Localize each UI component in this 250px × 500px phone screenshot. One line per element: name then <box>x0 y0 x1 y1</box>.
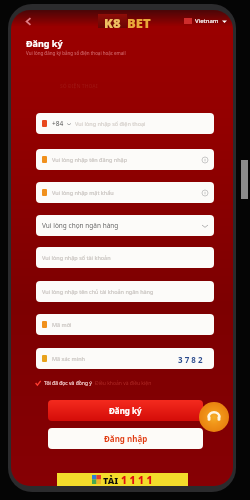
button[interactable]: Vietnam <box>184 17 227 25</box>
staticText: Vui lòng nhập mật khẩu <box>52 189 114 196</box>
button[interactable]: Mã mời <box>36 314 214 335</box>
staticText: K8 <box>104 14 121 28</box>
staticText: Đăng ký <box>26 37 63 49</box>
staticText: Đăng ký <box>109 405 142 416</box>
staticText: BET <box>127 14 151 28</box>
staticText: Vui lòng chọn ngân hàng <box>42 221 119 230</box>
staticText: 1 1 1 1 <box>121 473 153 486</box>
button[interactable]: Tôi đã đọc và đồng ý <box>35 377 152 389</box>
button[interactable]: Vui lòng chọn ngân hàng <box>36 215 214 236</box>
staticText: 3 7 8 2 <box>178 354 203 365</box>
staticText: +84 <box>52 119 64 128</box>
staticText: Mã xác minh <box>52 355 85 362</box>
staticText: Vui lòng nhập số tài khoản <box>42 254 111 261</box>
staticText: Vui lòng đăng ký bằng số điện thoại hoặc… <box>26 50 126 56</box>
button[interactable]: K8BET home <box>98 14 151 28</box>
staticText: Điều khoản và điều kiện <box>95 380 152 387</box>
button[interactable]: Vui lòng nhập mật khẩu <box>36 182 214 203</box>
staticText: Vietnam <box>195 17 219 25</box>
staticText: TẢI <box>103 474 119 486</box>
staticText: Tôi đã đọc và đồng ý <box>44 380 92 387</box>
button[interactable]: Back <box>20 13 36 29</box>
staticText: SỐ ĐIỆN THOẠI <box>60 83 98 90</box>
staticText: Vui lòng nhập tên chủ tài khoản ngân hàn… <box>42 288 154 295</box>
button[interactable]: Đăng ký <box>48 400 203 421</box>
staticText: Mã mời <box>52 321 72 328</box>
button[interactable]: Vui lòng nhập số tài khoản <box>36 247 214 268</box>
staticText: Đăng nhập <box>104 433 148 444</box>
button[interactable]: Đăng nhập <box>48 428 203 449</box>
button[interactable]: Tải app <box>57 473 188 486</box>
staticText: Vui lòng nhập tên đăng nhập <box>52 156 128 163</box>
button[interactable]: +84 <box>36 113 214 134</box>
button[interactable]: Vui lòng nhập tên đăng nhập <box>36 149 214 170</box>
staticText: Vui lòng nhập số điện thoại <box>75 120 146 127</box>
button[interactable]: Vui lòng nhập tên chủ tài khoản ngân hàn… <box>36 281 214 302</box>
button[interactable]: Hỗ trợ khách hàng <box>199 402 229 432</box>
button[interactable]: Mã xác minh <box>36 348 214 369</box>
